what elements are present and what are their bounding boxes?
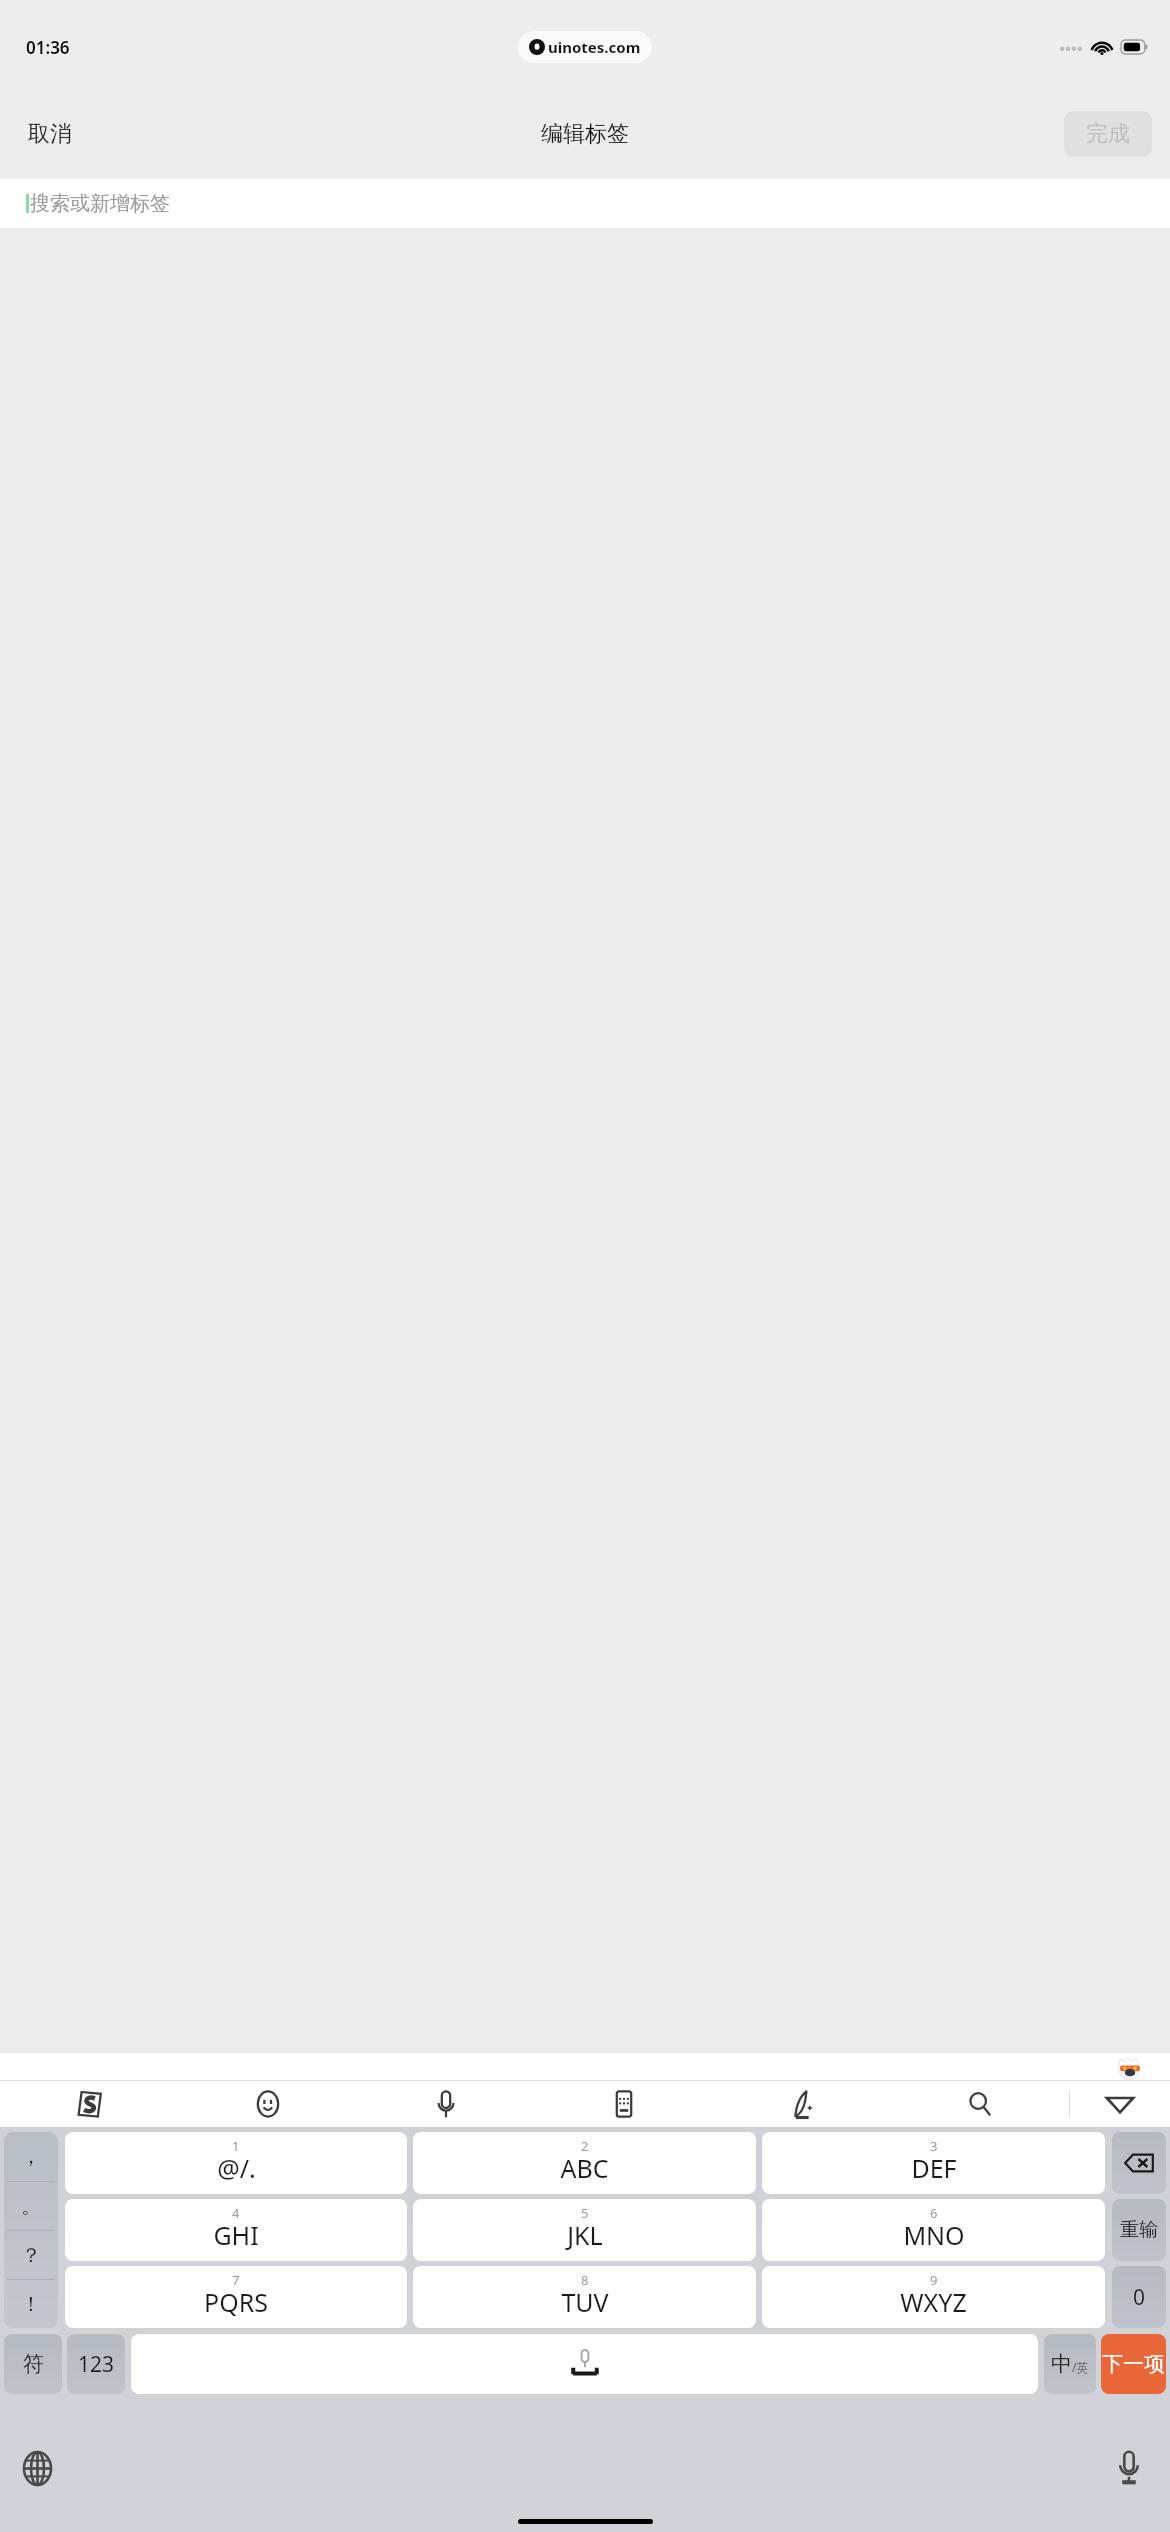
button[interactable]: Search (891, 2081, 1069, 2127)
button[interactable]: Backspace (1112, 2132, 1166, 2194)
other: Sogou mascot (1117, 2054, 1143, 2080)
staticText: 7 (232, 2271, 240, 2289)
button[interactable]: 123 (67, 2334, 125, 2394)
button[interactable]: Sogou (0, 2081, 179, 2127)
button[interactable]: 符 (4, 2334, 62, 2394)
button[interactable]: ， (4, 2132, 58, 2328)
staticText: 。 (21, 2194, 41, 2219)
staticText: ， (21, 2144, 41, 2169)
button[interactable]: 6 (762, 2199, 1105, 2261)
staticText: 取消 (28, 120, 72, 148)
button[interactable]: Space (131, 2334, 1038, 2394)
button[interactable]: ， (4, 2132, 58, 2181)
button[interactable]: Hide keyboard (1070, 2081, 1170, 2127)
button[interactable]: 4 (65, 2199, 407, 2261)
staticText: 4 (232, 2204, 240, 2222)
staticText: 5 (581, 2204, 589, 2222)
staticText: ABC (560, 2151, 609, 2185)
button[interactable]: 8 (413, 2266, 756, 2328)
staticText: 符 (23, 2351, 44, 2377)
staticText: JKL (567, 2218, 603, 2252)
staticText: 8 (581, 2271, 589, 2289)
staticText: 下一项 (1102, 2351, 1165, 2377)
button[interactable]: 完成 (1064, 111, 1152, 157)
button[interactable]: 中英切换 (1044, 2334, 1096, 2394)
staticText: 123 (78, 2350, 115, 2379)
button[interactable]: ？ (4, 2231, 58, 2279)
button[interactable]: Emoji (179, 2081, 357, 2127)
staticText: 01:36 (26, 36, 70, 59)
staticText: 编辑标签 (541, 120, 629, 148)
staticText: 1 (232, 2137, 240, 2155)
button[interactable]: 0 (1112, 2266, 1166, 2328)
staticText: 6 (930, 2204, 938, 2222)
staticText: /英 (1072, 2359, 1089, 2375)
staticText: 0 (1133, 2283, 1146, 2312)
staticText: 2 (581, 2137, 589, 2155)
staticText: MNO (903, 2218, 965, 2252)
button[interactable]: 7 (65, 2266, 407, 2328)
button[interactable]: 搜索或新增标签 (0, 179, 1170, 228)
staticText: 中 (1051, 2351, 1072, 2377)
staticText: WXYZ (900, 2285, 967, 2319)
staticText: ？ (21, 2243, 41, 2268)
button[interactable]: 下一项 (1101, 2334, 1166, 2394)
button[interactable]: ！ (4, 2280, 58, 2328)
button[interactable]: Voice input (1106, 2445, 1152, 2491)
button[interactable]: 1 (65, 2132, 407, 2194)
staticText: @/. (217, 2151, 256, 2185)
button[interactable]: Voice input (357, 2081, 535, 2127)
staticText: PQRS (204, 2285, 268, 2319)
staticText: TUV (561, 2285, 609, 2319)
button[interactable]: 取消 (0, 88, 100, 179)
button[interactable]: 3 (762, 2132, 1105, 2194)
staticText: 完成 (1086, 120, 1130, 148)
staticText: 重输 (1120, 2218, 1158, 2242)
staticText: 9 (930, 2271, 938, 2289)
staticText: DEF (911, 2151, 957, 2185)
staticText: 搜索或新增标签 (30, 191, 170, 216)
button[interactable]: Change keyboard (14, 2445, 60, 2491)
staticText: GHI (213, 2218, 259, 2252)
button[interactable]: 2 (413, 2132, 756, 2194)
button[interactable]: Keyboard layout (535, 2081, 713, 2127)
staticText: uinotes.com (548, 37, 641, 57)
staticText: ！ (21, 2292, 41, 2317)
button[interactable]: 5 (413, 2199, 756, 2261)
staticText: 3 (930, 2137, 938, 2155)
button[interactable]: 。 (4, 2182, 58, 2230)
button[interactable]: 9 (762, 2266, 1105, 2328)
button[interactable]: Handwriting (713, 2081, 891, 2127)
button[interactable]: 重输 (1112, 2199, 1166, 2261)
